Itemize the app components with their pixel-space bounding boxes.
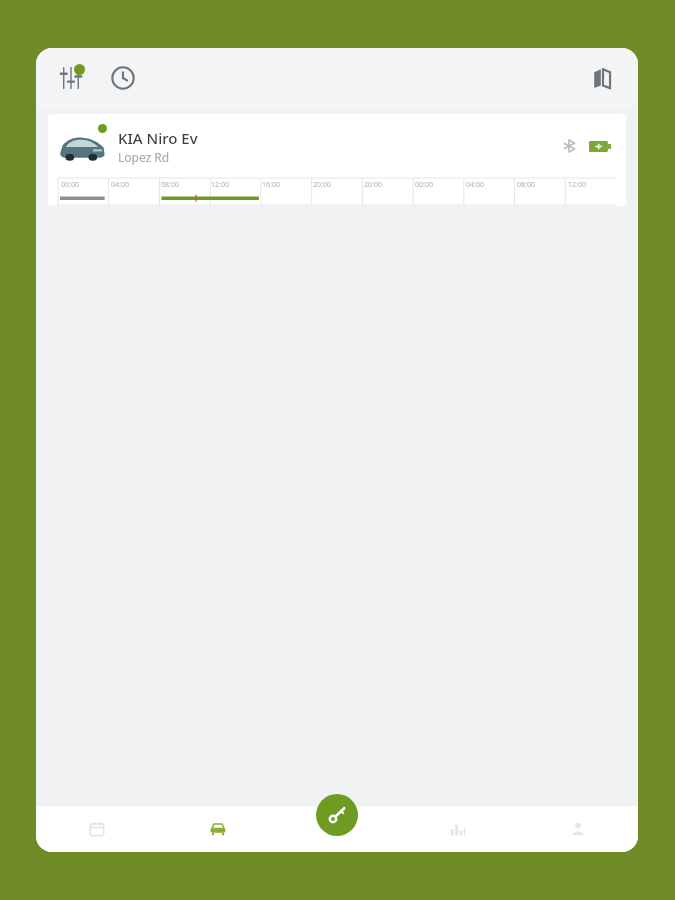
staticText: 20:00 [313, 180, 331, 190]
staticText: 12:00 [211, 180, 229, 190]
staticText: 12:00 [568, 180, 586, 190]
button[interactable]: Profile [518, 806, 638, 852]
button[interactable]: Map [580, 55, 626, 101]
button[interactable]: Filter [48, 55, 94, 101]
button[interactable]: Vehicles [157, 806, 278, 852]
button[interactable]: History [100, 55, 146, 101]
button[interactable]: KIA Niro Ev [48, 114, 626, 206]
staticText: 04:00 [466, 180, 484, 190]
staticText: 08:00 [517, 180, 535, 190]
staticText: KIA Niro Ev [118, 128, 198, 148]
staticText: Lopez Rd [118, 149, 170, 165]
staticText: 16:00 [262, 180, 280, 190]
button[interactable]: Unlock [316, 794, 358, 836]
button[interactable]: Bookings [36, 806, 157, 852]
staticText: 00:00 [415, 180, 433, 190]
staticText: 00:00 [61, 180, 79, 190]
staticText: 04:00 [111, 180, 129, 190]
button[interactable]: Bluetooth [556, 133, 582, 159]
staticText: 20:00 [364, 180, 382, 190]
staticText: 08:00 [161, 180, 179, 190]
